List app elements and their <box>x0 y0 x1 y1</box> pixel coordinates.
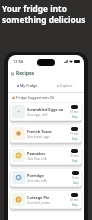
staticText: 45 min <box>70 198 79 202</box>
staticText: Easy <box>72 203 78 207</box>
button[interactable]: Cottage Pie <box>10 190 82 209</box>
staticText: 20 min <box>70 154 79 158</box>
button[interactable]: French Toast <box>10 124 82 143</box>
button[interactable]: Scrambled Eggs on Toast <box>10 102 82 121</box>
staticText: Porridge <box>27 173 44 178</box>
staticText: Fridge Suggestions (5) <box>16 95 55 100</box>
staticText: Uses beef, potato <box>27 201 50 205</box>
staticText: 15 min <box>70 132 79 136</box>
staticText: Explore <box>60 83 73 88</box>
staticText: Uses eggs, milk <box>27 113 48 117</box>
staticText: Easy <box>73 181 79 185</box>
staticText: My Fridge <box>20 83 38 88</box>
staticText: something delicious <box>2 14 86 25</box>
button[interactable]: Explore <box>46 79 84 92</box>
staticText: Easy <box>72 115 78 119</box>
staticText: 8 min <box>72 176 79 180</box>
button[interactable]: My Fridge <box>8 79 46 92</box>
staticText: Cottage Pie <box>27 195 50 200</box>
staticText: Uses bread, eggs <box>27 135 50 139</box>
staticText: 17:56 <box>13 59 24 64</box>
staticText: Scrambled Eggs on Toast <box>27 107 69 112</box>
staticText: Easy <box>72 159 78 163</box>
staticText: Recipes <box>16 70 35 77</box>
staticText: 10 min <box>70 110 79 114</box>
staticText: Your fridge into <box>2 3 67 14</box>
staticText: Pancakes <box>27 151 46 156</box>
button[interactable]: Menu <box>10 71 15 76</box>
staticText: Uses oats, milk <box>27 179 47 183</box>
button[interactable]: Porridge <box>10 168 82 187</box>
staticText: Uses flour, milk <box>27 157 47 161</box>
button[interactable]: Pancakes <box>10 146 82 165</box>
staticText: Easy <box>72 137 78 141</box>
staticText: French Toast <box>27 129 52 134</box>
